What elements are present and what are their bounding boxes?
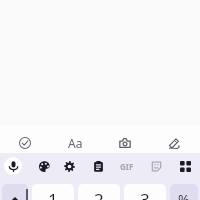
button[interactable]: Aa: [50, 129, 100, 157]
button[interactable]: Mark done: [0, 129, 50, 157]
button[interactable]: 2: [78, 184, 120, 200]
button[interactable]: Draw: [150, 129, 200, 157]
button[interactable]: 1: [32, 184, 74, 200]
button[interactable]: Camera: [100, 129, 150, 157]
button[interactable]: Shift: [2, 184, 28, 200]
button[interactable]: GIF: [118, 157, 136, 175]
staticText: GIF: [120, 161, 134, 172]
button[interactable]: Clipboard: [89, 157, 107, 175]
button[interactable]: Voice input: [4, 157, 22, 175]
staticText: 1: [48, 188, 58, 200]
staticText: 2: [94, 188, 104, 200]
staticText: 3: [140, 188, 150, 200]
staticText: Aa: [68, 135, 83, 151]
button[interactable]: %: [170, 184, 198, 200]
button[interactable]: Stickers: [147, 157, 165, 175]
button[interactable]: 3: [124, 184, 166, 200]
button[interactable]: More options: [176, 157, 194, 175]
button[interactable]: Themes: [35, 157, 53, 175]
staticText: %: [178, 190, 190, 200]
button[interactable]: Settings: [60, 157, 78, 175]
